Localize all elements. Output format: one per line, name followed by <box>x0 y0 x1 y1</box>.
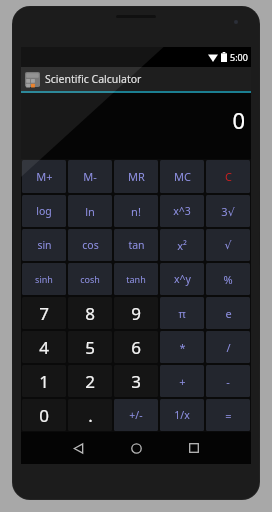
button[interactable]: √ <box>206 229 250 261</box>
staticText: 0 <box>232 105 245 135</box>
staticText: ln <box>85 204 95 219</box>
staticText: * <box>179 340 186 355</box>
button[interactable]: cosh <box>68 263 112 295</box>
button[interactable]: 3√ <box>206 195 250 227</box>
staticText: C <box>225 169 232 184</box>
staticText: 2 <box>85 370 95 393</box>
button[interactable]: x² <box>160 229 204 261</box>
button[interactable]: 1/x <box>160 399 204 431</box>
staticText: 5 <box>85 336 95 359</box>
staticText: cos <box>82 238 99 252</box>
staticText: √ <box>224 239 232 252</box>
staticText: 8 <box>85 302 95 325</box>
staticText: - <box>226 374 230 389</box>
button[interactable]: n! <box>114 195 158 227</box>
staticText: = <box>225 408 232 423</box>
button[interactable]: 8 <box>68 297 112 329</box>
button[interactable]: π <box>160 297 204 329</box>
staticText: x^y <box>174 272 191 286</box>
staticText: x^3 <box>173 204 191 218</box>
button[interactable]: + <box>160 365 204 397</box>
button[interactable]: 7 <box>22 297 66 329</box>
button[interactable]: / <box>206 331 250 363</box>
staticText: 6 <box>131 336 141 359</box>
staticText: sin <box>37 238 52 252</box>
staticText: Scientific Calculator <box>45 72 142 86</box>
button[interactable]: Recent apps <box>172 432 216 464</box>
button[interactable]: . <box>68 399 112 431</box>
button[interactable]: * <box>160 331 204 363</box>
staticText: MC <box>174 169 191 184</box>
button[interactable]: Home <box>114 432 158 464</box>
staticText: M- <box>83 169 97 184</box>
button[interactable]: tan <box>114 229 158 261</box>
staticText: / <box>226 340 231 355</box>
button[interactable]: x^3 <box>160 195 204 227</box>
button[interactable]: % <box>206 263 250 295</box>
button[interactable]: log <box>22 195 66 227</box>
button[interactable]: MC <box>160 160 204 193</box>
button[interactable]: e <box>206 297 250 329</box>
button[interactable]: sinh <box>22 263 66 295</box>
staticText: tanh <box>126 273 146 285</box>
button[interactable]: 0 <box>22 399 66 431</box>
button[interactable]: Back <box>56 432 100 464</box>
staticText: n! <box>131 204 141 219</box>
staticText: 5:00 <box>230 51 248 63</box>
button[interactable]: 9 <box>114 297 158 329</box>
button[interactable]: M- <box>68 160 112 193</box>
staticText: e <box>225 306 232 321</box>
staticText: 7 <box>39 302 49 325</box>
button[interactable]: - <box>206 365 250 397</box>
staticText: 3√ <box>221 204 235 219</box>
staticText: sinh <box>35 273 53 285</box>
staticText: M+ <box>36 169 53 184</box>
staticText: + <box>179 374 186 389</box>
staticText: tan <box>128 238 145 252</box>
button[interactable]: sin <box>22 229 66 261</box>
button[interactable]: x^y <box>160 263 204 295</box>
button[interactable]: 2 <box>68 365 112 397</box>
staticText: 4 <box>39 336 49 359</box>
staticText: 0 <box>39 404 49 427</box>
staticText: % <box>223 272 233 287</box>
button[interactable]: Scientific Calculator <box>21 67 251 91</box>
button[interactable]: C <box>206 160 250 193</box>
button[interactable]: M+ <box>22 160 66 193</box>
button[interactable]: 5 <box>68 331 112 363</box>
button[interactable]: tanh <box>114 263 158 295</box>
staticText: π <box>178 306 186 321</box>
button[interactable]: +/- <box>114 399 158 431</box>
staticText: 1 <box>39 370 49 393</box>
button[interactable]: 6 <box>114 331 158 363</box>
staticText: MR <box>128 169 145 184</box>
staticText: cosh <box>80 273 100 285</box>
staticText: 9 <box>131 302 141 325</box>
button[interactable]: 4 <box>22 331 66 363</box>
button[interactable]: ln <box>68 195 112 227</box>
button[interactable]: 3 <box>114 365 158 397</box>
staticText: 3 <box>131 370 141 393</box>
staticText: x² <box>177 238 187 253</box>
staticText: +/- <box>129 408 143 422</box>
staticText: . <box>88 404 93 427</box>
button[interactable]: cos <box>68 229 112 261</box>
button[interactable]: 1 <box>22 365 66 397</box>
staticText: log <box>36 204 52 218</box>
staticText: 1/x <box>174 408 190 422</box>
button[interactable]: = <box>206 399 250 431</box>
button[interactable]: MR <box>114 160 158 193</box>
